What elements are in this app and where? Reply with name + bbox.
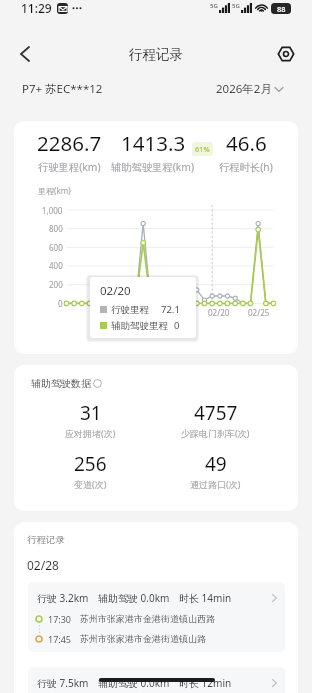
staticText: 行驶里程(km)	[38, 160, 101, 174]
staticText: P7+ 苏EC***12	[22, 81, 103, 97]
staticText: 88	[277, 4, 286, 14]
staticText: 1413.3	[121, 129, 186, 157]
staticText: 应对拥堵(次)	[65, 427, 116, 439]
staticText: 02/25	[248, 307, 270, 318]
staticText: 800	[49, 223, 63, 234]
staticText: 里程(km)	[38, 185, 71, 196]
staticText: 17:30	[48, 613, 72, 624]
staticText: 02/28	[27, 557, 59, 573]
staticText: 行驶 7.5km	[37, 676, 89, 690]
staticText: 通过路口(次)	[190, 478, 241, 490]
staticText: 02/20	[100, 283, 131, 299]
staticText: 02/20	[208, 307, 230, 318]
staticText: 辅助驾驶里程(km)	[111, 160, 195, 174]
staticText: 辅助驾驶数据	[31, 377, 91, 390]
staticText: 1,000	[42, 205, 63, 216]
staticText: 72.1	[161, 303, 180, 316]
staticText: 变道(次)	[74, 478, 107, 490]
button[interactable]: 行驶 3.2km	[28, 582, 285, 652]
staticText: 600	[49, 242, 63, 253]
staticText: 行驶 3.2km	[37, 591, 89, 605]
button[interactable]: 2026年2月	[216, 81, 283, 97]
staticText: 0	[58, 298, 63, 309]
staticText: 5G	[232, 2, 240, 10]
staticText: 4757	[194, 400, 238, 426]
staticText: 256	[74, 451, 107, 477]
staticText: 苏州市张家港市金港街道镇山西路	[80, 613, 215, 624]
staticText: 行驶里程	[111, 304, 149, 316]
staticText: 0	[174, 319, 180, 332]
staticText: 200	[49, 279, 63, 290]
staticText: 17:45	[48, 633, 72, 644]
staticText: 400	[49, 260, 63, 271]
button[interactable]: Settings	[271, 39, 301, 69]
staticText: 46.6	[226, 129, 267, 157]
staticText: 行程时长(h)	[219, 160, 273, 174]
staticText: 2026年2月	[216, 81, 272, 97]
staticText: 苏州市张家港市金港街道镇山路	[80, 633, 206, 644]
staticText: 49	[205, 451, 227, 477]
staticText: 时长 14min	[179, 591, 232, 605]
staticText: 2286.7	[37, 129, 102, 157]
staticText: 辅助驾驶 0.0km	[98, 676, 170, 690]
staticText: 辅助驾驶 0.0km	[98, 591, 170, 605]
staticText: 时长 12min	[179, 676, 232, 690]
staticText: 5G	[210, 2, 218, 10]
staticText: 11:29	[21, 0, 52, 16]
button[interactable]: P7+ 苏EC***12	[22, 81, 103, 97]
staticText: 辅助驾驶里程	[111, 320, 168, 332]
button[interactable]: 行驶 7.5km	[28, 667, 285, 693]
staticText: 行程记录	[27, 534, 65, 546]
button[interactable]: Back	[8, 37, 42, 71]
staticText: 少踩电门刹车(次)	[181, 427, 250, 439]
staticText: 61%	[195, 144, 210, 154]
staticText: 31	[80, 400, 102, 426]
staticText: 行程记录	[129, 46, 183, 63]
